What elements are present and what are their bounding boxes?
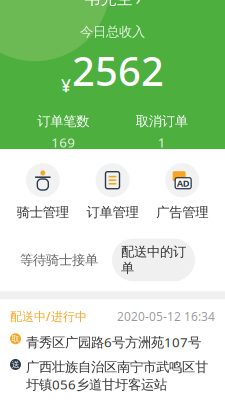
staticText: 2020-05-12 16:34 <box>117 308 215 324</box>
staticText: 169 <box>51 133 75 151</box>
staticText: 取消订单 <box>136 113 188 129</box>
staticText: 2562 <box>72 44 164 97</box>
button[interactable]: 韦先生 <box>84 0 140 9</box>
staticText: 骑士管理 <box>17 204 69 221</box>
staticText: 等待骑士接单 <box>20 252 98 268</box>
staticText: 广西壮族自治区南宁市武鸣区甘圩镇056乡道甘圩客运站 <box>26 359 208 393</box>
staticText: 订单笔数 <box>37 113 89 129</box>
staticText: 配送中/进行中 <box>10 308 87 324</box>
button[interactable]: AD <box>147 163 217 221</box>
button[interactable]: 配送中的订单 <box>112 239 195 281</box>
staticText: AD <box>177 177 190 189</box>
staticText: 1 <box>158 133 166 151</box>
staticText: ¥ <box>61 74 71 97</box>
staticText: 送 <box>11 360 19 369</box>
staticText: 广告管理 <box>156 204 208 221</box>
staticText: 青秀区广园路6号方洲苑107号 <box>26 333 201 351</box>
staticText: 韦先生 <box>84 0 132 9</box>
staticText: 今日总收入 <box>80 23 145 40</box>
staticText: 取 <box>11 334 19 344</box>
button[interactable]: 等待骑士接单 <box>12 247 106 273</box>
staticText: 配送中的订单 <box>121 244 186 276</box>
button[interactable]: 骑士管理 <box>8 163 78 221</box>
button[interactable]: 配送中/进行中 <box>0 299 225 400</box>
staticText: › <box>135 0 140 9</box>
button[interactable]: 订单管理 <box>78 163 147 221</box>
staticText: 订单管理 <box>86 204 138 221</box>
